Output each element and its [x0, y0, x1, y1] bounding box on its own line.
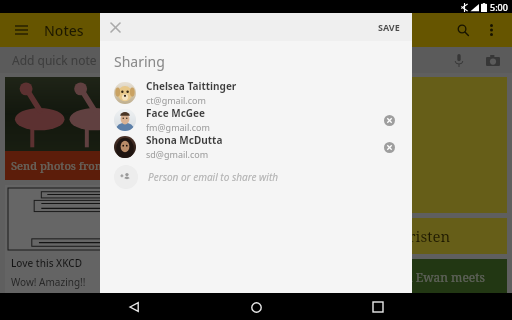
staticText: sd@gmail.com — [146, 148, 209, 160]
button[interactable]: Recent apps — [366, 295, 390, 319]
staticText: Wow! Amazing!! — [11, 275, 86, 289]
staticText: Kim Cross — [266, 176, 308, 188]
staticText: Shona McDutta — [146, 133, 223, 147]
staticText: fm@gmail.com — [146, 121, 210, 133]
staticText: Michael Jordan meets Bill Ewan meets Don… — [266, 269, 500, 301]
staticText: Person or email to share with — [148, 170, 278, 184]
staticText: Love this XKCD — [11, 256, 83, 270]
button[interactable]: Remove Shona McDutta — [378, 136, 400, 158]
button[interactable]: Remove Face McGee — [378, 109, 400, 131]
staticText: Send photos from the zoo — [11, 158, 147, 173]
button[interactable]: Home — [244, 295, 268, 319]
staticText: SAVE — [378, 21, 400, 33]
button[interactable]: Search — [452, 19, 474, 41]
button[interactable]: Face McGee — [100, 106, 412, 133]
button[interactable]: Close — [104, 16, 126, 38]
staticText: Add quick note — [12, 52, 97, 68]
button[interactable]: More options — [480, 19, 502, 41]
staticText: Sharing — [114, 52, 165, 71]
button[interactable]: Back — [122, 295, 146, 319]
button[interactable]: Chelsea Taittinger — [100, 79, 412, 106]
button[interactable]: Shona McDutta — [100, 133, 412, 160]
staticText: Notes — [44, 21, 84, 40]
staticText: Face McGee — [146, 106, 205, 120]
button[interactable]: Open navigation drawer — [10, 19, 32, 41]
staticText: Surprise party for Kristen — [266, 226, 451, 246]
staticText: Chelsea Taittinger — [146, 79, 237, 93]
button[interactable]: SAVE — [366, 15, 412, 39]
button[interactable]: Person or email to share with — [100, 160, 412, 194]
staticText: ct@gmail.com — [146, 94, 206, 106]
staticText: 5:00 — [490, 1, 508, 13]
